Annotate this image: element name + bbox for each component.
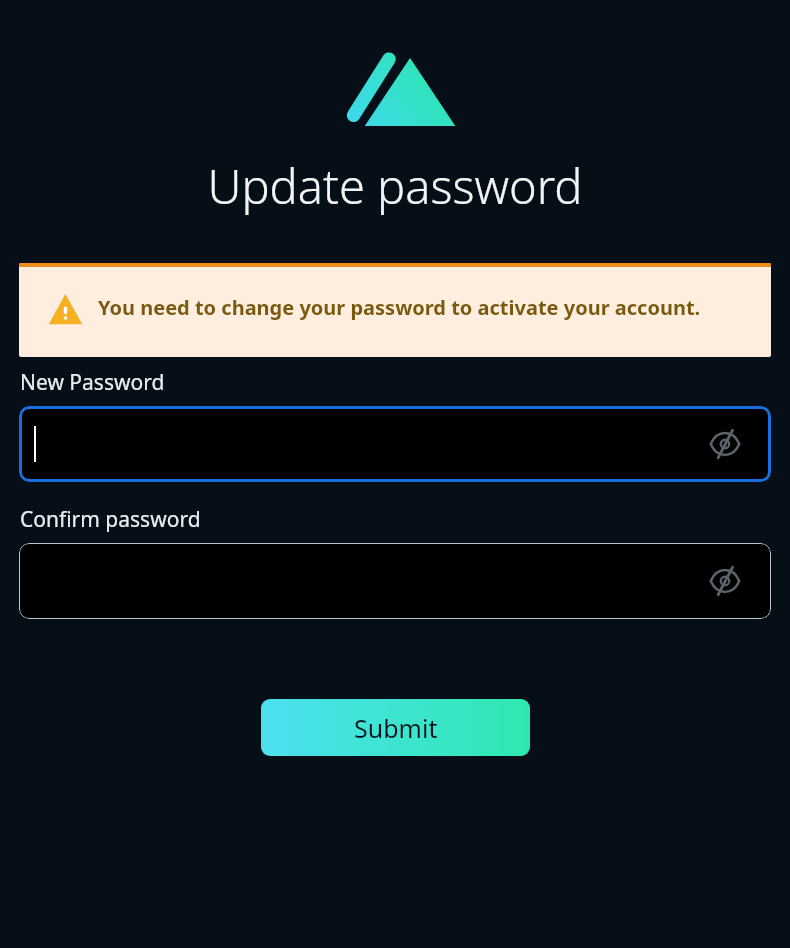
- staticText: Submit: [354, 711, 438, 745]
- staticText: New Password: [20, 368, 165, 397]
- staticText: You need to change your password to acti…: [98, 294, 747, 321]
- button[interactable]: Show password: [705, 561, 745, 601]
- button[interactable]: Show password: [19, 543, 771, 619]
- button[interactable]: You need to change your password to acti…: [19, 263, 771, 357]
- other: App logo: [345, 52, 445, 124]
- staticText: Confirm password: [20, 505, 201, 534]
- button[interactable]: Show password: [19, 406, 771, 482]
- button[interactable]: Submit: [261, 699, 530, 756]
- staticText: Update password: [0, 154, 790, 218]
- button[interactable]: Show password: [705, 424, 745, 464]
